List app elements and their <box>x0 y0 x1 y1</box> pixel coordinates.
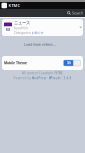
staticText: Load more entries... <box>24 42 56 47</box>
staticText: Search <box>72 10 83 15</box>
staticText: お知らせ <box>32 31 44 35</box>
staticText: WPtouch : 3.4.8 <box>48 76 71 80</box>
button[interactable]: WPtouch : 3.4.8 <box>48 76 71 80</box>
button[interactable]: ニュース <box>2 19 83 36</box>
staticText: WordPress <box>31 76 45 80</box>
button[interactable]: WordPress <box>31 76 45 80</box>
staticText: • <box>46 76 47 80</box>
staticText: All content Copyright ©KTMC <box>22 71 63 75</box>
button[interactable]: Load more entries... <box>24 36 56 53</box>
staticText: Powered by <box>13 76 30 80</box>
button[interactable]: Site icon <box>1 3 7 8</box>
staticText: Mobile Theme <box>4 61 27 65</box>
staticText: KTMC <box>8 3 19 8</box>
button[interactable]: Mobile Theme, on <box>63 60 80 66</box>
staticText: Categories: <box>14 31 31 35</box>
button[interactable]: Search <box>67 9 85 17</box>
staticText: ON <box>66 61 70 65</box>
staticText: ニュース <box>14 20 30 26</box>
button[interactable]: Mobile Theme <box>2 56 27 70</box>
staticText: by admin <box>14 26 28 30</box>
